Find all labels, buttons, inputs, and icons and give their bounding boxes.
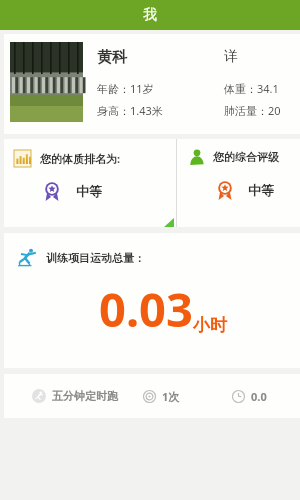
button[interactable]: 黄科: [4, 34, 300, 134]
staticText: 肺活量：20: [224, 103, 281, 118]
staticText: 1次: [162, 389, 180, 404]
staticText: 黄科: [97, 48, 127, 67]
staticText: 您的体质排名为:: [40, 151, 121, 166]
other: 次数: [143, 390, 156, 403]
staticText: 中等: [248, 182, 274, 198]
staticText: 年龄：11岁: [97, 81, 154, 96]
other: 时长: [232, 390, 245, 403]
other: 五分钟定时跑: [32, 389, 46, 403]
staticText: 0.0: [251, 389, 267, 404]
staticText: 体重：34.1: [224, 81, 279, 96]
staticText: 详: [224, 48, 238, 66]
staticText: 小时: [193, 315, 227, 336]
staticText: 您的综合评级: [213, 150, 279, 164]
button[interactable]: 五分钟定时跑: [4, 374, 300, 418]
other: 训练项目: [17, 248, 37, 268]
button[interactable]: 训练项目: [4, 233, 300, 368]
staticText: 我: [143, 6, 157, 24]
staticText: 训练项目运动总量：: [46, 251, 145, 265]
button[interactable]: 综合评级: [177, 139, 300, 227]
button[interactable]: 体质排名: [4, 139, 177, 227]
staticText: 0.03: [99, 277, 193, 341]
staticText: 五分钟定时跑: [52, 389, 118, 403]
other: 体质排名: [14, 150, 31, 167]
staticText: 中等: [76, 183, 102, 199]
staticText: 身高：1.43米: [97, 103, 163, 118]
other: 综合评级: [189, 149, 205, 165]
